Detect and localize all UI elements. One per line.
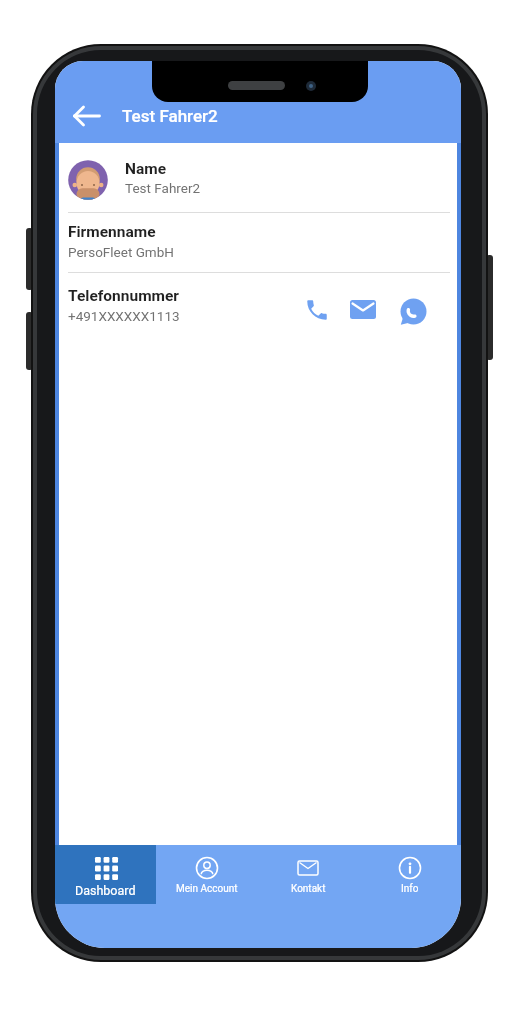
button[interactable]: Info — [359, 845, 461, 904]
staticText: Test Fahrer2 — [122, 106, 218, 126]
staticText: +491XXXXXX1113 — [68, 308, 180, 324]
staticText: Test Fahrer2 — [125, 180, 201, 196]
button[interactable] — [345, 292, 381, 328]
staticText: Firmenname — [68, 223, 156, 241]
button[interactable] — [299, 292, 335, 328]
button[interactable] — [395, 293, 431, 329]
button[interactable]: Mein Account — [156, 845, 257, 904]
button[interactable] — [69, 98, 105, 134]
staticText: Kontakt — [291, 883, 326, 895]
staticText: Mein Account — [176, 883, 238, 895]
staticText: Dashboard — [75, 883, 136, 898]
button[interactable]: Dashboard — [55, 845, 156, 904]
staticText: Name — [125, 160, 167, 178]
staticText: PersoFleet GmbH — [68, 244, 174, 260]
button[interactable]: Kontakt — [257, 845, 359, 904]
staticText: Telefonnummer — [68, 287, 180, 305]
staticText: Info — [401, 883, 419, 895]
button[interactable] — [55, 143, 461, 212]
